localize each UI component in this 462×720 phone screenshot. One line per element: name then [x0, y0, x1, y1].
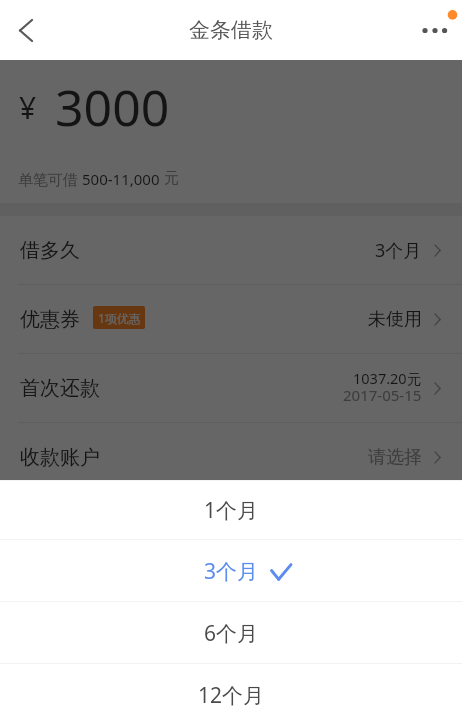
staticText: 优惠券 [20, 307, 80, 332]
staticText: 借多久 [20, 238, 80, 263]
staticText: 请选择 [368, 446, 422, 469]
button[interactable]: 12个月 [0, 664, 462, 720]
staticText: 6个月 [204, 619, 259, 648]
staticText: 3个月 [204, 557, 259, 586]
button[interactable]: Back [0, 0, 52, 60]
staticText: 3000 [55, 73, 170, 141]
button[interactable]: 3个月 [0, 540, 462, 602]
staticText: 1个月 [204, 496, 259, 525]
staticText: 1项优惠 [98, 310, 141, 326]
button[interactable]: 收款账户 [0, 423, 462, 492]
button[interactable]: 首次还款 [0, 354, 462, 423]
staticText: ¥ [19, 87, 37, 128]
button[interactable]: 借多久 [0, 216, 462, 285]
staticText: 12个月 [198, 681, 265, 710]
staticText: 3个月 [375, 238, 422, 263]
button[interactable]: 1个月 [0, 481, 462, 540]
staticText: 金条借款 [189, 17, 273, 43]
staticText: 收款账户 [20, 445, 100, 470]
staticText: 单笔可借 [18, 169, 82, 189]
staticText: 元 [164, 169, 179, 188]
button[interactable]: Dismiss [0, 60, 462, 720]
staticText: 首次还款 [20, 376, 100, 401]
staticText: 1037.20元 [353, 368, 422, 388]
staticText: 500-11,000 [82, 169, 164, 189]
button[interactable]: 优惠券 [0, 285, 462, 354]
button[interactable]: More options [400, 0, 462, 60]
staticText: 2017-05-15 [343, 385, 422, 405]
staticText: 未使用 [368, 308, 422, 331]
button[interactable]: 6个月 [0, 602, 462, 664]
